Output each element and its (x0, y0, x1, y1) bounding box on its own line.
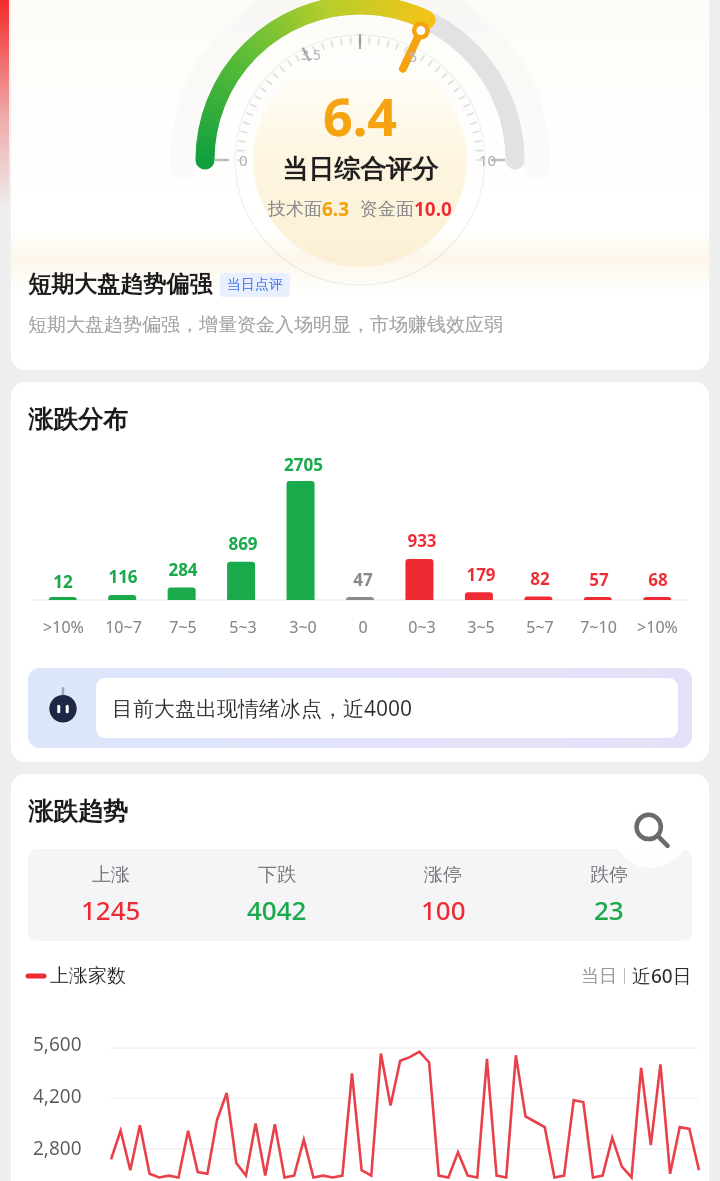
staticText: 116 (108, 565, 138, 588)
staticText: 涨跌趋势 (28, 796, 128, 827)
staticText: 4042 (247, 892, 307, 927)
staticText: >10% (43, 616, 84, 638)
staticText: 5 (409, 47, 418, 66)
staticText: 82 (530, 567, 550, 590)
staticText: 10 (479, 150, 497, 170)
staticText: 当日点评 (227, 276, 283, 294)
staticText: 6.3 (322, 196, 350, 222)
button[interactable]: 上涨 (28, 863, 194, 927)
staticText: 179 (466, 563, 496, 586)
staticText: 跌停 (590, 863, 628, 887)
staticText: 0 (239, 150, 248, 170)
staticText: 5~3 (229, 616, 257, 638)
button[interactable]: 近60日 (632, 963, 692, 989)
staticText: 当日综合评分 (282, 153, 438, 186)
staticText: 资金面 (360, 198, 414, 221)
staticText: 3~5 (467, 616, 495, 638)
staticText: 近60日 (632, 963, 692, 989)
staticText: 57 (589, 568, 609, 591)
button[interactable]: 跌停 (526, 863, 692, 927)
staticText: 933 (407, 529, 437, 552)
staticText: 6.4 (323, 80, 398, 151)
button[interactable]: 下跌 (194, 863, 360, 927)
staticText: 68 (648, 568, 668, 591)
staticText: 10.0 (414, 196, 452, 222)
staticText: 短期大盘趋势偏强 (28, 270, 212, 299)
staticText: 10~7 (105, 616, 142, 638)
staticText: 0~3 (408, 616, 436, 638)
staticText: 7~10 (580, 616, 617, 638)
staticText: 2,800 (33, 1135, 82, 1161)
other: AI assistant (44, 689, 82, 727)
staticText: 47 (353, 568, 373, 591)
button[interactable]: 目前大盘出现情绪冰点，近4000 (96, 678, 678, 738)
button[interactable]: Search (613, 792, 689, 868)
button[interactable]: 涨停 (360, 863, 526, 927)
staticText: 1245 (81, 892, 141, 927)
staticText: 12 (53, 570, 73, 593)
staticText: 3.5 (301, 45, 321, 64)
staticText: 4,200 (33, 1083, 82, 1109)
staticText: 2705 (284, 453, 323, 476)
button[interactable]: 当日 (581, 965, 617, 988)
staticText: 284 (168, 558, 198, 581)
staticText: 上涨家数 (50, 964, 126, 988)
staticText: 869 (228, 532, 258, 555)
staticText: 5,600 (33, 1031, 82, 1057)
staticText: 23 (594, 892, 624, 927)
staticText: 涨停 (424, 863, 462, 887)
staticText: 3~0 (289, 616, 317, 638)
staticText: >10% (637, 616, 678, 638)
staticText: 涨跌分布 (28, 404, 128, 435)
staticText: 上涨 (92, 863, 130, 887)
staticText: 目前大盘出现情绪冰点，近4000 (112, 694, 413, 723)
button[interactable]: AI assistant (28, 668, 692, 748)
staticText: 0 (358, 616, 368, 638)
staticText: 下跌 (258, 863, 296, 887)
staticText: 7~5 (169, 616, 197, 638)
staticText: 100 (421, 892, 466, 927)
staticText: 当日 (581, 965, 617, 988)
staticText: 5~7 (526, 616, 554, 638)
button[interactable]: 当日点评 (227, 276, 283, 294)
staticText: 技术面 (268, 198, 322, 221)
staticText: 短期大盘趋势偏强，增量资金入场明显，市场赚钱效应弱 (28, 313, 503, 337)
